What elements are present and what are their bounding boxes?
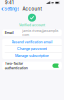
staticText: Verified account xyxy=(19,23,45,27)
staticText: Manage subscription xyxy=(15,53,49,58)
staticText: Two-factor authentication xyxy=(5,61,28,70)
staticText: Resend verification email xyxy=(11,40,52,44)
staticText: 9:41 xyxy=(5,0,14,5)
button[interactable]: Manage subscription xyxy=(2,52,62,59)
staticText: Email xyxy=(5,31,14,35)
staticText: Change password xyxy=(17,47,47,51)
button[interactable]: Settings xyxy=(0,5,19,13)
button[interactable]: Change password xyxy=(2,45,62,52)
staticText: Settings xyxy=(4,6,19,11)
staticText: jamie.rivera@example.com xyxy=(22,29,59,37)
staticText: Account xyxy=(22,6,41,12)
button[interactable]: Resend verification email xyxy=(2,39,62,45)
